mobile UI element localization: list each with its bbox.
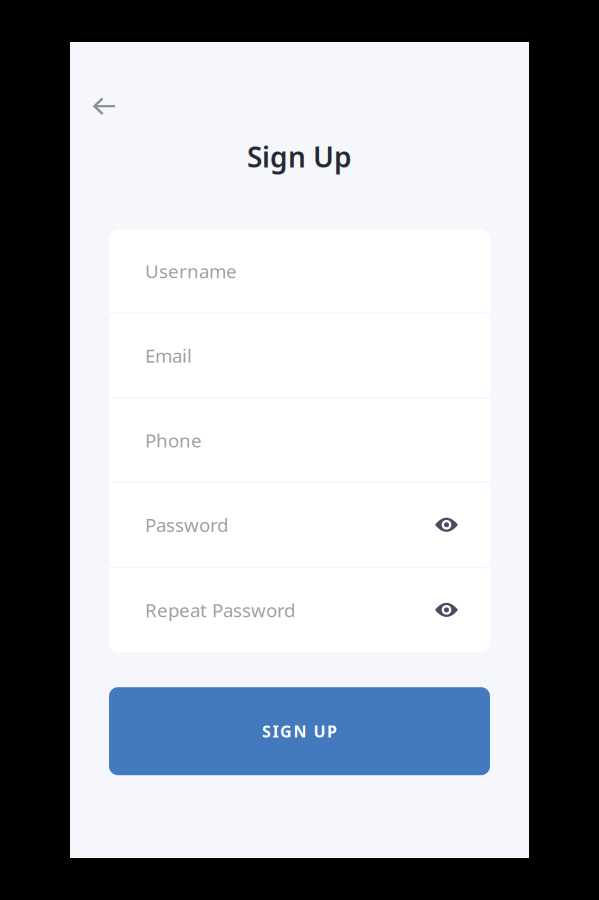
- button[interactable]: Show password: [425, 483, 490, 567]
- staticText: SIGN UP: [262, 721, 337, 742]
- button[interactable]: Password: [109, 483, 425, 567]
- button[interactable]: Phone: [109, 398, 490, 482]
- staticText: Sign Up: [247, 138, 352, 175]
- button[interactable]: Back: [82, 86, 127, 126]
- button[interactable]: Username: [109, 229, 490, 313]
- staticText: Email: [145, 343, 192, 368]
- button[interactable]: Repeat Password: [109, 568, 425, 652]
- staticText: Username: [145, 259, 237, 283]
- staticText: Repeat Password: [145, 597, 295, 622]
- staticText: Phone: [145, 428, 202, 453]
- staticText: Password: [145, 512, 228, 537]
- button[interactable]: SIGN UP: [109, 687, 490, 775]
- button[interactable]: Email: [109, 314, 490, 397]
- button[interactable]: Show password: [425, 568, 490, 652]
